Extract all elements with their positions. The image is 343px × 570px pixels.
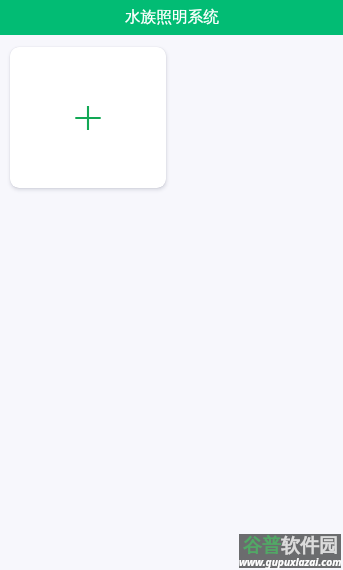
staticText: www.gupuxlazai.com xyxy=(239,555,341,569)
staticText: 谷普 xyxy=(243,534,281,558)
button[interactable]: Add device xyxy=(10,47,166,188)
staticText: 水族照明系统 xyxy=(125,7,219,27)
staticText: 软件园 xyxy=(281,534,338,558)
